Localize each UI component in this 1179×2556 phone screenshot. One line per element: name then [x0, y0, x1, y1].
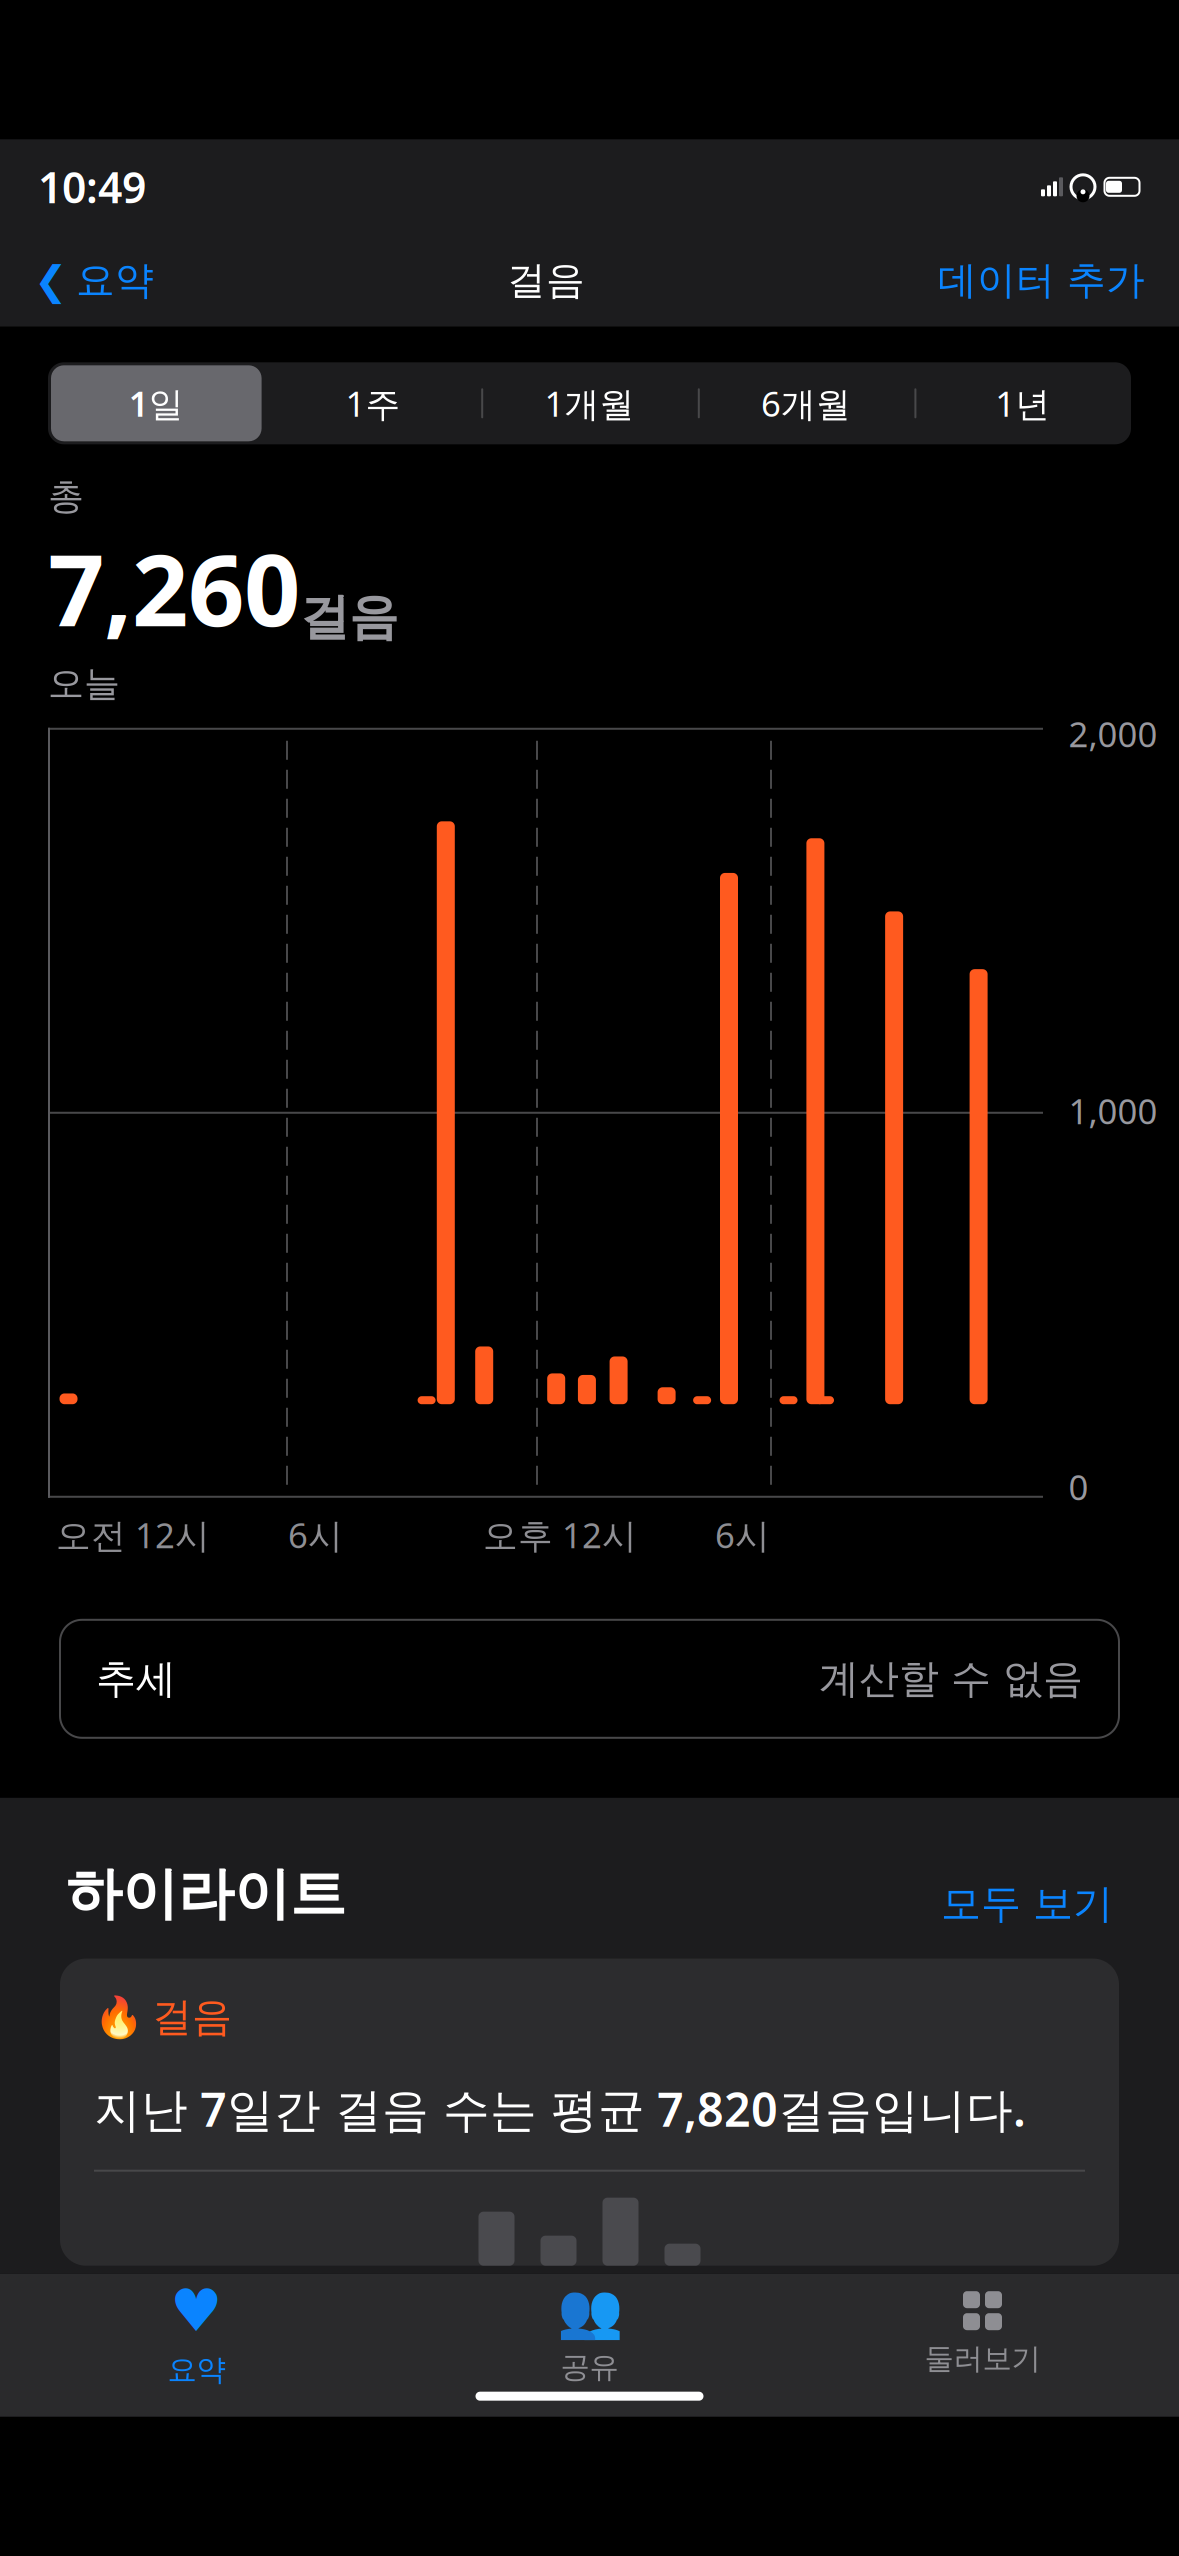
button[interactable]: 추세	[60, 1620, 1119, 1738]
staticText: 오전 12시	[56, 1512, 210, 1558]
staticText: 오늘	[48, 662, 120, 706]
button[interactable]: 1년	[914, 362, 1131, 444]
staticText: 6개월	[761, 380, 851, 426]
staticText: 1,000	[1068, 1088, 1157, 1134]
button[interactable]: 1개월	[481, 362, 698, 444]
staticText: 둘러보기	[924, 2341, 1040, 2377]
button[interactable]: 1일	[48, 362, 265, 444]
staticText: 걸음	[300, 587, 398, 648]
staticText: 요약	[167, 2352, 225, 2388]
staticText: 걸음	[152, 1993, 232, 2042]
staticText: 6시	[715, 1512, 770, 1558]
staticText: 0	[1068, 1464, 1088, 1510]
button[interactable]: 6개월	[698, 362, 914, 444]
staticText: 1주	[345, 380, 400, 426]
button[interactable]: ♥	[0, 2267, 393, 2398]
staticText: 1개월	[544, 380, 634, 426]
button[interactable]: 모두 보기	[941, 1879, 1113, 1929]
staticText: 모두 보기	[941, 1879, 1113, 1929]
staticText: ❮	[34, 258, 68, 303]
staticText: 공유	[560, 2349, 618, 2385]
staticText: 총	[48, 474, 84, 518]
staticText: 추세	[96, 1654, 176, 1703]
button[interactable]: 데이터 추가	[932, 249, 1151, 312]
staticText: 요약	[76, 257, 154, 304]
button[interactable]: 🔥	[60, 1959, 1119, 2266]
staticText: 지난 7일간 걸음 수는 평균 7,820걸음입니다.	[94, 2078, 1026, 2140]
staticText: 하이라이트	[66, 1860, 346, 1929]
staticText: 데이터 추가	[938, 257, 1145, 304]
staticText: 1일	[129, 380, 184, 426]
staticText: 👥	[556, 2280, 622, 2341]
button[interactable]: 둘러보기	[786, 2279, 1179, 2387]
staticText: 1년	[995, 380, 1050, 426]
staticText: 10:49	[38, 158, 146, 215]
staticText: 6시	[288, 1512, 343, 1558]
button[interactable]: ❮	[28, 249, 160, 312]
button[interactable]: 1주	[345, 362, 400, 444]
button[interactable]: 👥	[393, 2270, 786, 2395]
staticText: 2,000	[1068, 711, 1157, 757]
staticText: 오후 12시	[483, 1512, 637, 1558]
staticText: 7,260	[48, 522, 300, 653]
staticText: ♥	[170, 2277, 223, 2344]
staticText: 🔥	[94, 1994, 144, 2040]
staticText: 계산할 수 없음	[819, 1654, 1083, 1703]
staticText: 걸음	[507, 257, 585, 304]
